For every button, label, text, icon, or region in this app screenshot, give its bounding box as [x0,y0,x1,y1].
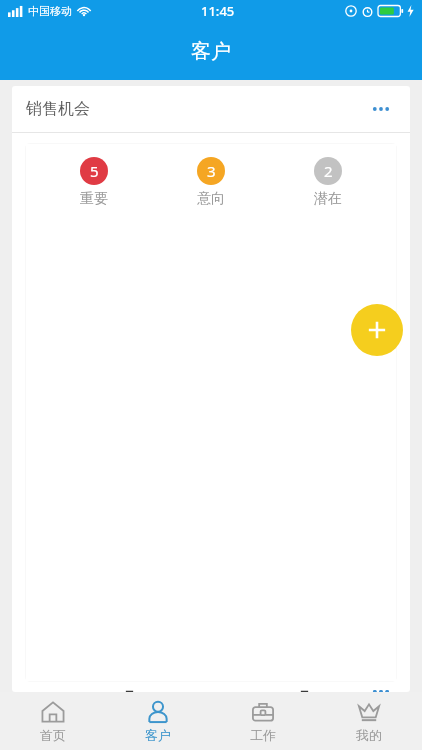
button[interactable]: 首页 [0,692,105,750]
button[interactable]: 2 [280,157,376,208]
staticText: 工作 [250,727,276,743]
button[interactable]: 客户 [105,692,210,750]
staticText: 11:45 [201,2,235,20]
staticText: 2 [324,161,333,181]
button[interactable]: 我的 [316,692,422,750]
staticText: 意向 [197,190,225,208]
staticText: 潜在 [314,190,342,208]
staticText: 5 [90,161,99,181]
staticText: 3 [207,161,216,181]
staticText: 我的 [356,727,382,743]
button[interactable]: 5 [46,157,142,208]
staticText: 中国移动 [28,4,72,18]
button[interactable]: 工作 [210,692,316,750]
button[interactable]: Add [351,304,403,356]
staticText: 首页 [40,727,66,743]
button[interactable]: 销售机会 [12,86,410,132]
button[interactable]: More [366,94,396,124]
staticText: 重要 [80,190,108,208]
staticText: 销售机会 [26,99,90,119]
staticText: 客户 [191,39,231,64]
button[interactable]: 3 [163,157,259,208]
staticText: 客户 [145,727,171,743]
